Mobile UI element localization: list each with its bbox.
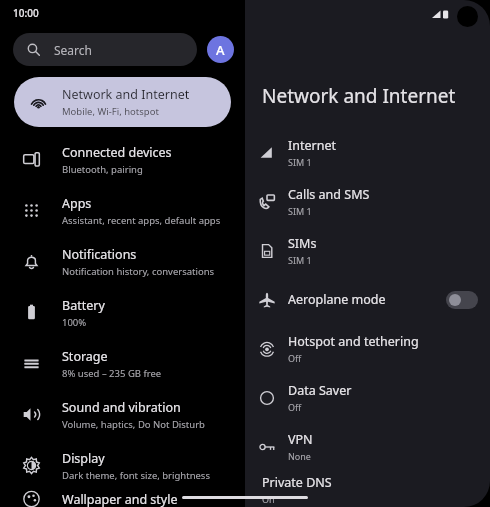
button[interactable]: Private DNS xyxy=(245,471,490,507)
staticText: None xyxy=(288,450,311,462)
button[interactable]: Network and Internet xyxy=(14,77,231,127)
staticText: Battery xyxy=(62,297,105,314)
staticText: Connected devices xyxy=(62,144,172,161)
button[interactable]: VPN xyxy=(245,422,490,471)
button[interactable]: Account xyxy=(207,36,234,63)
staticText: SIM 1 xyxy=(288,205,312,217)
button[interactable]: Hotspot and tethering xyxy=(245,324,490,373)
button[interactable]: Internet xyxy=(245,128,490,177)
staticText: 100% xyxy=(62,316,87,329)
button[interactable]: Aeroplane mode xyxy=(446,291,478,309)
button[interactable]: Calls and SMS xyxy=(245,177,490,226)
button[interactable]: Aeroplane mode xyxy=(245,275,490,324)
staticText: Search xyxy=(54,42,92,58)
staticText: Dark theme, font size, brightness xyxy=(62,469,210,482)
staticText: On xyxy=(262,493,275,505)
staticText: 10:00 xyxy=(13,6,39,20)
button[interactable]: Search xyxy=(13,33,197,66)
button[interactable]: Data Saver xyxy=(245,373,490,422)
staticText: Off xyxy=(288,352,302,364)
staticText: Sound and vibration xyxy=(62,399,181,416)
staticText: Mobile, Wi-Fi, hotspot xyxy=(62,105,159,118)
staticText: SIM 1 xyxy=(288,156,312,168)
staticText: Notifications xyxy=(62,246,137,263)
staticText: Bluetooth, pairing xyxy=(62,163,143,176)
staticText: SIM 1 xyxy=(288,254,312,266)
staticText: Aeroplane mode xyxy=(288,291,386,308)
staticText: Storage xyxy=(62,348,108,365)
staticText: Network and Internet xyxy=(262,83,456,109)
button[interactable]: Apps xyxy=(0,185,245,236)
staticText: Data Saver xyxy=(288,382,352,399)
staticText: Private DNS xyxy=(262,474,332,491)
staticText: Wallpaper and style xyxy=(62,491,178,507)
button[interactable]: SIMs xyxy=(245,226,490,275)
button[interactable]: Sound and vibration xyxy=(0,389,245,440)
staticText: Volume, haptics, Do Not Disturb xyxy=(62,418,205,431)
staticText: VPN xyxy=(288,431,313,448)
staticText: Calls and SMS xyxy=(288,186,370,203)
staticText: Hotspot and tethering xyxy=(288,333,419,350)
button[interactable]: Connected devices xyxy=(0,134,245,185)
button[interactable]: Display xyxy=(0,440,245,491)
button[interactable]: Notifications xyxy=(0,236,245,287)
staticText: Off xyxy=(288,401,302,413)
staticText: Internet xyxy=(288,137,336,154)
staticText: SIMs xyxy=(288,235,317,252)
staticText: Notification history, conversations xyxy=(62,265,215,278)
button[interactable]: Battery xyxy=(0,287,245,338)
staticText: Assistant, recent apps, default apps xyxy=(62,214,221,227)
staticText: A xyxy=(216,41,225,59)
button[interactable]: Wallpaper and style xyxy=(0,491,245,507)
staticText: 8% used – 235 GB free xyxy=(62,367,162,380)
staticText: Display xyxy=(62,450,105,467)
staticText: Apps xyxy=(62,195,92,212)
staticText: Network and Internet xyxy=(62,86,190,103)
button[interactable]: Storage xyxy=(0,338,245,389)
